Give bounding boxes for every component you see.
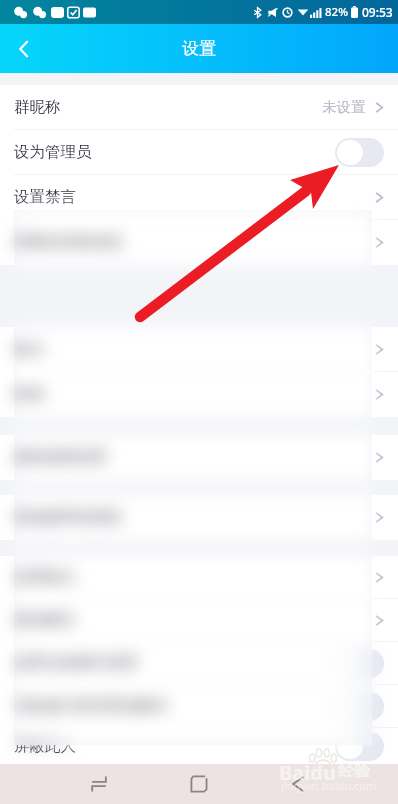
- staticText: 消息免打扰并置顶聊天: [14, 696, 169, 716]
- staticText: 把他推荐给朋友: [14, 507, 123, 527]
- button[interactable]: 设置备注: [0, 556, 398, 598]
- staticText: 查看全部群成员: [14, 232, 123, 252]
- staticText: 标签: [14, 384, 45, 404]
- staticText: 把他推荐给朋友: [14, 507, 123, 527]
- button[interactable]: Toggle 屏蔽此人: [335, 732, 384, 761]
- button[interactable]: 消息免打扰并置顶聊天: [0, 685, 398, 727]
- staticText: 82%: [325, 4, 348, 20]
- staticText: 设置: [182, 38, 216, 59]
- button[interactable]: 备注: [0, 327, 398, 371]
- button[interactable]: 查找聊天: [0, 599, 398, 641]
- staticText: 未设置: [322, 98, 366, 116]
- button[interactable]: 设置禁言: [0, 175, 398, 219]
- staticText: 设置当前聊天背景: [14, 653, 138, 673]
- staticText: 设置当前聊天背景: [14, 653, 138, 673]
- staticText: 设置备注: [14, 567, 76, 587]
- button[interactable]: 屏蔽此人: [0, 728, 398, 764]
- staticText: jingyan.baidu.com: [281, 778, 377, 793]
- button[interactable]: 查看全部群成员: [0, 220, 398, 264]
- button[interactable]: 标签: [0, 372, 398, 416]
- button[interactable]: Toggle 设为管理员: [335, 138, 384, 167]
- button[interactable]: 设置禁言: [0, 175, 398, 219]
- button[interactable]: Home: [173, 764, 225, 804]
- staticText: 屏蔽此人: [14, 736, 76, 756]
- button[interactable]: 消息免打扰并置顶聊天: [0, 685, 398, 727]
- staticText: 群昵称: [14, 97, 61, 117]
- staticText: 标签: [14, 384, 45, 404]
- staticText: 设置禁言: [14, 187, 76, 207]
- button[interactable]: Toggle 设为管理员: [335, 138, 384, 167]
- button[interactable]: Toggle 消息免打扰并置顶聊天: [335, 692, 384, 721]
- staticText: 设置禁言: [14, 187, 76, 207]
- button[interactable]: 朋友权限设置: [0, 435, 398, 479]
- staticText: 备注: [14, 339, 45, 359]
- button[interactable]: 查看全部群成员: [0, 220, 398, 264]
- staticText: 查找聊天: [14, 610, 76, 630]
- staticText: 09:53: [362, 4, 393, 20]
- staticText: 经验: [338, 761, 370, 781]
- button[interactable]: Back: [273, 764, 325, 804]
- button[interactable]: 标签: [0, 372, 398, 416]
- staticText: 消息免打扰并置顶聊天: [14, 696, 169, 716]
- button[interactable]: Toggle 设置当前聊天背景: [335, 649, 384, 678]
- staticText: 设置备注: [14, 567, 76, 587]
- button[interactable]: 群昵称: [0, 85, 398, 129]
- button[interactable]: 设置当前聊天背景: [0, 642, 398, 684]
- button[interactable]: 把他推荐给朋友: [0, 495, 398, 539]
- button[interactable]: 备注: [0, 327, 398, 371]
- staticText: 朋友权限设置: [14, 447, 107, 467]
- button[interactable]: 设置备注: [0, 556, 398, 598]
- button[interactable]: 把他推荐给朋友: [0, 495, 398, 539]
- button[interactable]: 朋友权限设置: [0, 435, 398, 479]
- button[interactable]: Toggle 屏蔽此人: [335, 732, 384, 761]
- button[interactable]: 设为管理员: [0, 130, 398, 174]
- button[interactable]: 屏蔽此人: [0, 728, 398, 764]
- staticText: 未设置: [322, 98, 366, 116]
- button[interactable]: 群昵称: [0, 85, 398, 129]
- staticText: 查看全部群成员: [14, 232, 123, 252]
- button[interactable]: 设为管理员: [0, 130, 398, 174]
- staticText: 设为管理员: [14, 142, 92, 162]
- staticText: 屏蔽此人: [14, 736, 76, 756]
- button[interactable]: 查找聊天: [0, 599, 398, 641]
- staticText: Baidu: [279, 759, 336, 786]
- staticText: 朋友权限设置: [14, 447, 107, 467]
- button[interactable]: Recent apps: [73, 764, 125, 804]
- staticText: 群昵称: [14, 97, 61, 117]
- staticText: 设为管理员: [14, 142, 92, 162]
- staticText: 查找聊天: [14, 610, 76, 630]
- staticText: 备注: [14, 339, 45, 359]
- button[interactable]: Toggle 消息免打扰并置顶聊天: [335, 692, 384, 721]
- button[interactable]: Toggle 设置当前聊天背景: [335, 649, 384, 678]
- button[interactable]: 设置当前聊天背景: [0, 642, 398, 684]
- button[interactable]: Back: [0, 25, 48, 73]
